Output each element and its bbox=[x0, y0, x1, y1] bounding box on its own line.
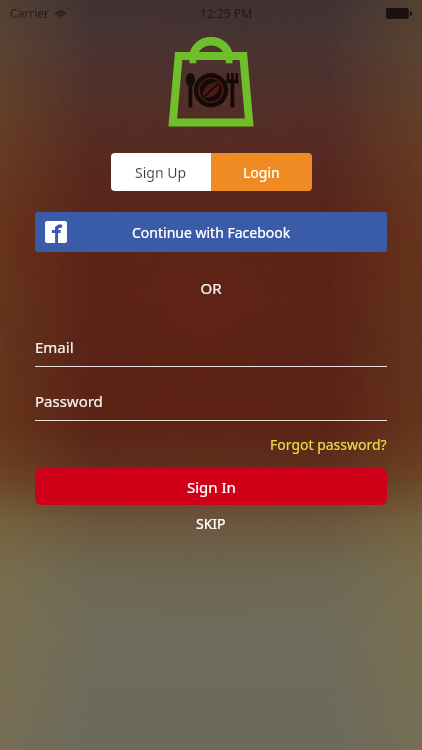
staticText: Forgot password? bbox=[270, 435, 387, 454]
button[interactable]: Sign Up bbox=[111, 153, 211, 191]
staticText: Carrier bbox=[10, 5, 50, 21]
button[interactable]: Continue with Facebook bbox=[35, 212, 387, 252]
staticText: Password bbox=[35, 391, 103, 411]
staticText: SKIP bbox=[196, 514, 226, 533]
button[interactable]: Login bbox=[211, 153, 312, 191]
button[interactable]: Email bbox=[35, 337, 387, 367]
staticText: OR bbox=[0, 278, 422, 298]
button[interactable]: Forgot password? bbox=[270, 435, 387, 454]
staticText: Login bbox=[243, 163, 280, 182]
button[interactable]: Sign In bbox=[35, 468, 387, 505]
staticText: Continue with Facebook bbox=[132, 223, 291, 242]
button[interactable]: SKIP bbox=[196, 514, 226, 533]
staticText: 12:29 PM bbox=[200, 5, 253, 21]
staticText: Sign Up bbox=[135, 163, 187, 182]
staticText: Email bbox=[35, 337, 74, 357]
button[interactable]: Password bbox=[35, 391, 387, 421]
staticText: Sign In bbox=[187, 477, 236, 497]
